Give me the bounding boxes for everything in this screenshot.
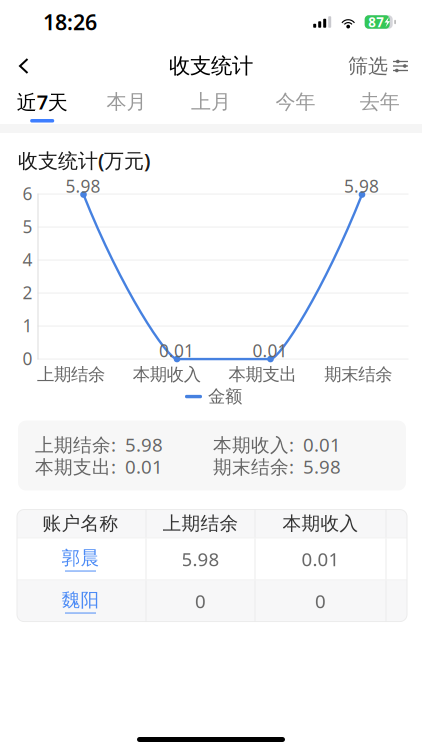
button[interactable]: 今年	[253, 88, 338, 124]
staticText: 近7天	[17, 88, 68, 115]
staticText: 5.98	[303, 454, 341, 479]
button[interactable]: 魏阳	[15, 581, 145, 622]
staticText: 5	[22, 215, 32, 238]
staticText: 魏阳	[61, 589, 99, 611]
staticText: 上月	[191, 89, 231, 114]
button[interactable]: 本月	[84, 88, 169, 124]
staticText: 账户名称	[42, 512, 118, 535]
staticText: 18:26	[43, 8, 97, 36]
staticText: 1	[22, 314, 32, 337]
staticText: 去年	[360, 89, 400, 114]
staticText: 5.98	[181, 547, 219, 571]
staticText: 上期结余	[162, 512, 238, 535]
staticText: 5.98	[344, 175, 379, 198]
button[interactable]: 上月	[169, 88, 253, 124]
staticText: 本期收入	[133, 364, 201, 385]
staticText: 5.98	[125, 432, 163, 457]
staticText: 4	[22, 248, 32, 271]
button[interactable]: 近7天	[0, 88, 84, 124]
button[interactable]: 去年	[338, 88, 422, 124]
button[interactable]: 返回	[0, 44, 62, 88]
staticText: 郭晨	[61, 547, 99, 569]
staticText: 5.98	[65, 175, 100, 198]
staticText: 0	[315, 589, 326, 613]
staticText: 0.01	[125, 454, 163, 479]
staticText: 上期结余:	[35, 432, 116, 457]
staticText: 收支统计(万元)	[18, 147, 150, 174]
staticText: 0.01	[252, 339, 287, 362]
staticText: 本期收入:	[213, 432, 294, 457]
button[interactable]: 筛选	[348, 44, 422, 88]
staticText: 期末结余:	[213, 454, 294, 479]
staticText: 87	[368, 13, 384, 31]
button[interactable]: 郭晨	[15, 539, 145, 580]
staticText: 0.01	[159, 339, 194, 362]
staticText: 2	[22, 281, 32, 304]
staticText: 本期收入	[282, 512, 358, 535]
staticText: 今年	[275, 89, 315, 114]
staticText: 0.01	[301, 547, 339, 571]
staticText: 6	[22, 182, 32, 205]
staticText: 0.01	[303, 432, 341, 457]
staticText: 本月	[107, 89, 147, 114]
staticText: 筛选	[348, 54, 388, 78]
staticText: 期末结余	[324, 364, 392, 385]
staticText: 上期结余	[37, 364, 105, 385]
staticText: 本期支出:	[35, 454, 116, 479]
staticText: 本期支出	[228, 364, 296, 385]
staticText: 0	[195, 589, 206, 613]
staticText: 收支统计	[169, 53, 253, 79]
staticText: 0	[22, 347, 32, 370]
staticText: 金额	[208, 386, 242, 407]
